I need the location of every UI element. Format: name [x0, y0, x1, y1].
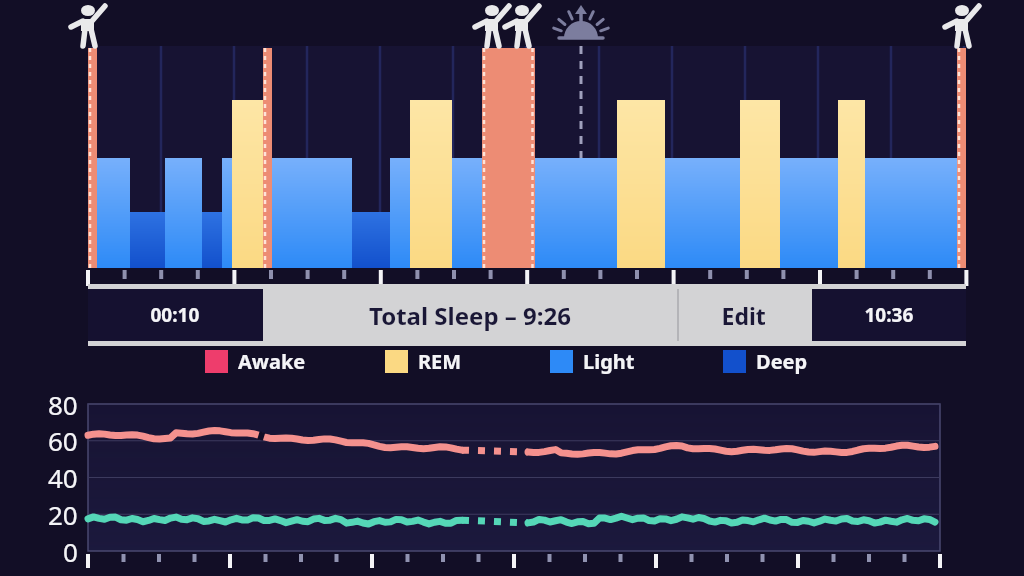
button[interactable]: Wake time 10:36	[812, 289, 966, 341]
button[interactable]: Sleep start 00:10	[88, 289, 263, 341]
button[interactable]: Total Sleep 9:26	[263, 289, 678, 341]
button[interactable]: Edit	[681, 289, 812, 341]
